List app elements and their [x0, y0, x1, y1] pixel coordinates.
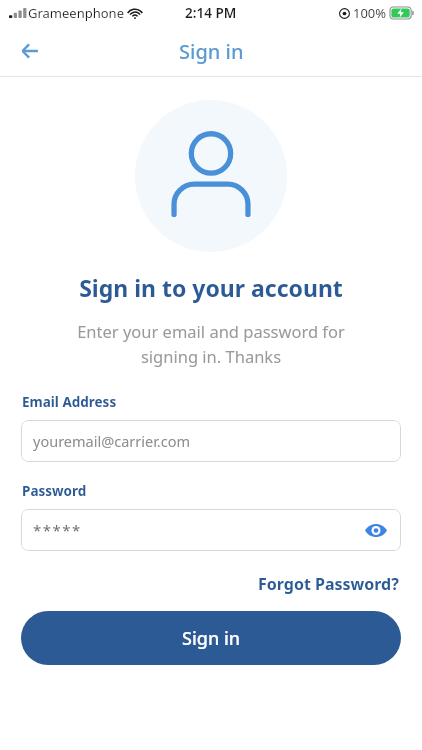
- staticText: Sign in to your account: [0, 272, 422, 303]
- staticText: Sign in: [182, 626, 241, 651]
- button[interactable]: *****: [21, 509, 401, 551]
- button[interactable]: Show password: [361, 515, 391, 545]
- staticText: Email Address: [22, 393, 117, 411]
- staticText: youremail@carrier.com: [33, 431, 191, 451]
- button[interactable]: youremail@carrier.com: [21, 420, 401, 462]
- button[interactable]: Sign in: [21, 611, 401, 665]
- staticText: 2:14 PM: [185, 4, 237, 22]
- staticText: Grameenphone: [28, 4, 124, 22]
- staticText: 100%: [353, 4, 387, 22]
- button[interactable]: Forgot Password?: [256, 571, 401, 597]
- staticText: Enter your email and password for signin…: [40, 320, 382, 367]
- staticText: Forgot Password?: [258, 573, 399, 595]
- staticText: *****: [33, 520, 82, 540]
- staticText: Sign in: [179, 38, 244, 65]
- staticText: Password: [22, 482, 87, 500]
- button[interactable]: Back: [8, 29, 52, 73]
